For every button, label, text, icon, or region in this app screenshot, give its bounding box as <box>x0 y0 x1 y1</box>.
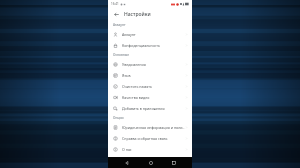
button[interactable]: Главный экран <box>145 157 156 168</box>
staticText: Язык <box>122 73 131 78</box>
button[interactable]: Очистить память <box>108 81 192 92</box>
button[interactable]: Назад <box>121 157 132 168</box>
staticText: Конфиденциальность <box>122 43 161 48</box>
button[interactable]: Обзор <box>168 157 179 168</box>
staticText: Аккаунт <box>113 23 126 27</box>
staticText: О нас <box>122 147 132 152</box>
button[interactable]: Добавить в приложения <box>108 103 192 114</box>
staticText: Справка и обратная связь <box>122 136 168 141</box>
staticText: Настройки <box>124 11 151 18</box>
staticText: Очистить память <box>122 84 152 89</box>
staticText: Основные <box>113 53 130 57</box>
button[interactable]: Уведомления <box>108 59 192 70</box>
button[interactable]: Язык <box>108 70 192 81</box>
staticText: Аккаунт <box>122 32 136 37</box>
staticText: Добавить в приложения <box>122 106 165 111</box>
staticText: Уведомления <box>122 62 146 67</box>
button[interactable]: Аккаунт <box>108 29 192 40</box>
button[interactable]: Назад <box>112 10 121 19</box>
staticText: Юридическая информация и поли.. <box>122 125 185 130</box>
button[interactable]: О нас <box>108 144 192 155</box>
button[interactable]: Юридическая информация и поли.. <box>108 122 192 133</box>
button[interactable]: Справка и обратная связь <box>108 133 192 144</box>
staticText: Опции <box>113 116 124 120</box>
staticText: 16:41 <box>111 2 119 6</box>
staticText: Качество видео <box>122 95 150 100</box>
button[interactable]: Качество видео <box>108 92 192 103</box>
button[interactable]: Конфиденциальность <box>108 40 192 51</box>
